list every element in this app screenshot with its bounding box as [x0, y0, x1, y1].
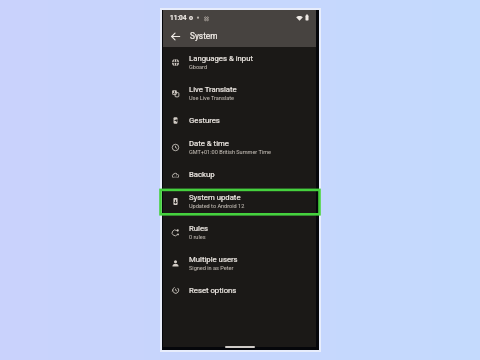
- staticText: Languages & input: [189, 54, 253, 63]
- button[interactable]: Reset options: [163, 279, 316, 302]
- staticText: Date & time: [189, 139, 229, 148]
- button[interactable]: System update: [163, 186, 316, 217]
- staticText: 11:04: [170, 14, 187, 22]
- button[interactable]: Languages & input: [163, 47, 316, 78]
- staticText: Backup: [189, 170, 215, 179]
- staticText: Live Translate: [189, 85, 237, 94]
- staticText: Gestures: [189, 116, 220, 125]
- button[interactable]: Backup: [163, 163, 316, 186]
- staticText: Use Live Translate: [189, 95, 234, 102]
- button[interactable]: Multiple users: [163, 248, 316, 279]
- button[interactable]: Rules: [163, 217, 316, 248]
- staticText: Updated to Android 12: [189, 203, 245, 210]
- staticText: Rules: [189, 224, 209, 233]
- button[interactable]: Date & time: [163, 132, 316, 163]
- staticText: GMT+01:00 British Summer Time: [189, 149, 271, 156]
- staticText: System update: [189, 193, 241, 202]
- staticText: Reset options: [189, 286, 237, 295]
- button[interactable]: Live Translate: [163, 78, 316, 109]
- staticText: Multiple users: [189, 255, 238, 264]
- button[interactable]: Back: [165, 26, 185, 46]
- staticText: System: [190, 31, 218, 41]
- button[interactable]: Gestures: [163, 109, 316, 132]
- staticText: 0 rules: [189, 234, 206, 241]
- staticText: Signed in as Peter: [189, 265, 234, 272]
- staticText: Gboard: [189, 64, 208, 71]
